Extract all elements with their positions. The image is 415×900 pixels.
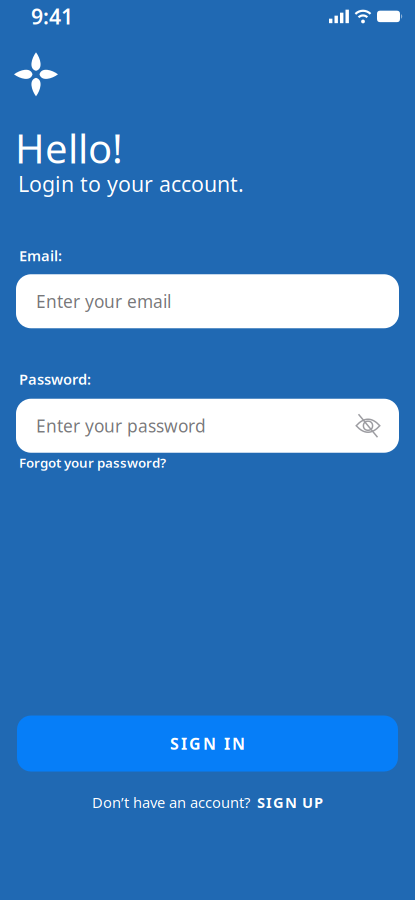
- staticText: Enter your email: [36, 290, 171, 313]
- staticText: Login to your account.: [18, 169, 244, 198]
- staticText: Forgot your password?: [19, 454, 166, 471]
- button[interactable]: Forgot your password?: [19, 454, 166, 471]
- staticText: 9:41: [31, 2, 73, 30]
- staticText: Email:: [19, 246, 62, 265]
- staticText: Don’t have an account?: [92, 792, 250, 812]
- staticText: Password:: [19, 369, 91, 389]
- staticText: S I G N U P: [257, 792, 323, 812]
- staticText: Enter your password: [36, 414, 206, 437]
- button[interactable]: Sign Up: [257, 792, 323, 812]
- staticText: Hello!: [15, 121, 123, 174]
- button[interactable]: Show password: [355, 414, 381, 438]
- button[interactable]: Enter your password: [16, 399, 399, 453]
- button[interactable]: Enter your email: [16, 274, 399, 328]
- button[interactable]: Sign In: [17, 715, 398, 771]
- staticText: S I G N I N: [170, 733, 245, 754]
